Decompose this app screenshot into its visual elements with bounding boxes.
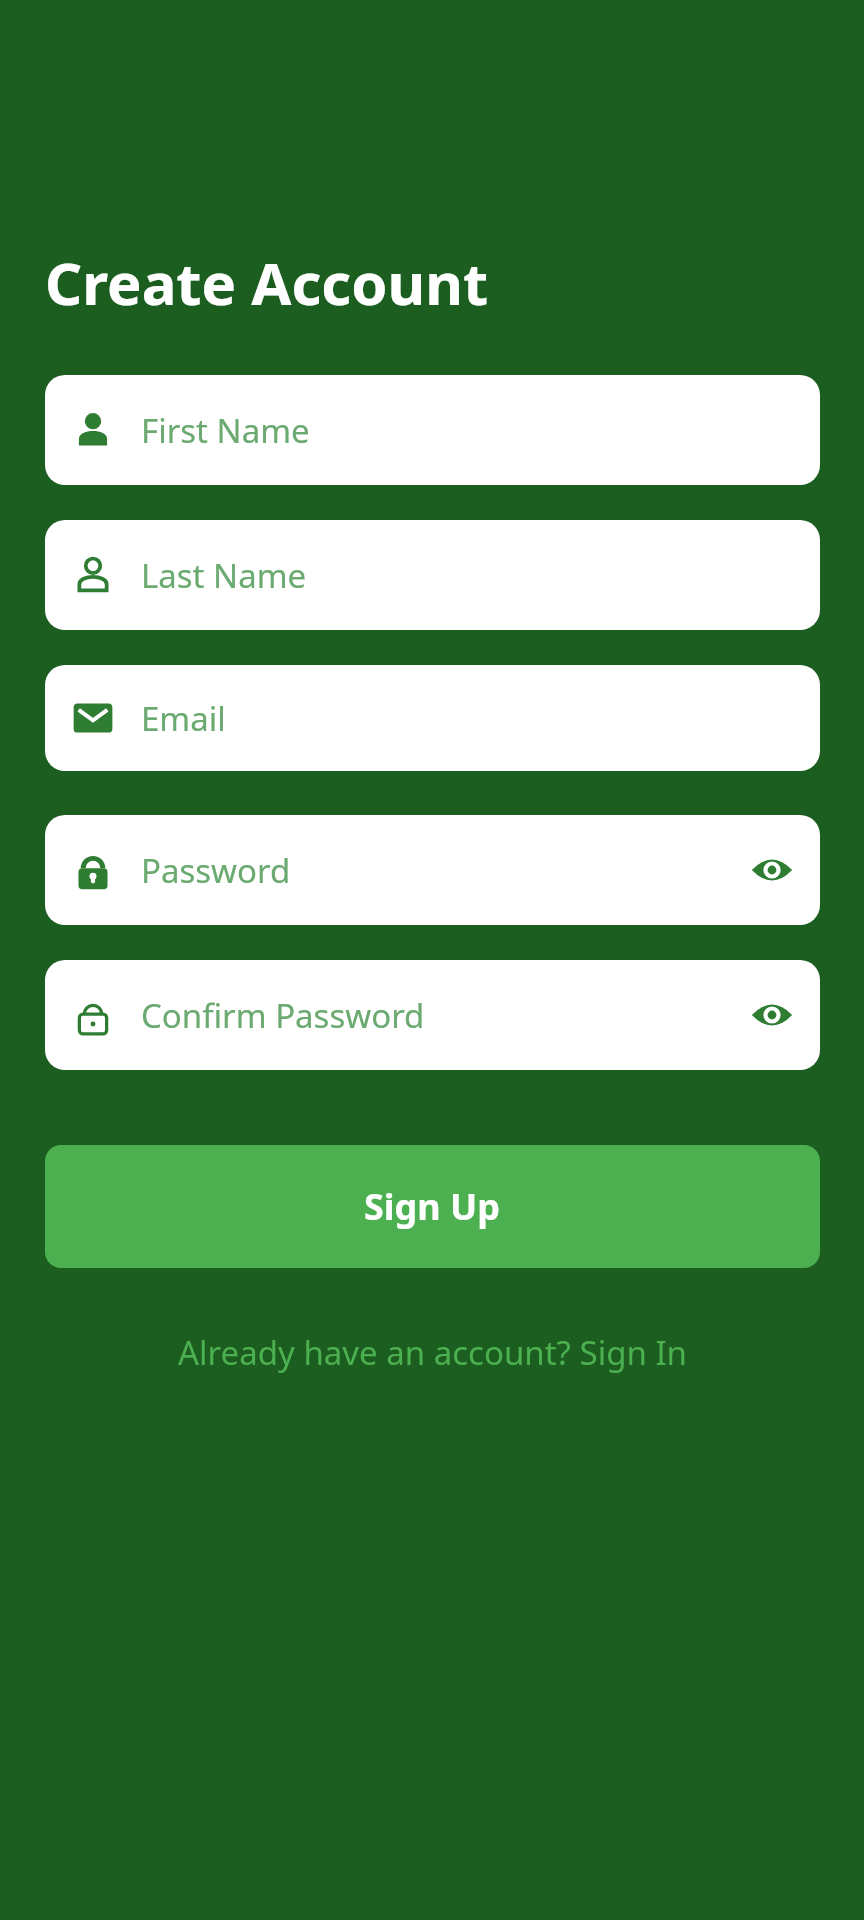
button[interactable]: Email (45, 665, 820, 771)
staticText: Already have an account? Sign In (178, 1330, 687, 1375)
button[interactable]: Sign Up (45, 1145, 820, 1268)
button[interactable]: First Name (45, 375, 820, 485)
button[interactable]: Show password (742, 985, 802, 1045)
staticText: Last Name (141, 553, 307, 598)
staticText: First Name (141, 408, 310, 453)
button[interactable]: Password (45, 815, 820, 925)
staticText: Sign Up (364, 1182, 501, 1231)
staticText: Create Account (45, 243, 489, 322)
staticText: Email (141, 696, 226, 741)
button[interactable]: Confirm Password (45, 960, 820, 1070)
button[interactable]: Last Name (45, 520, 820, 630)
staticText: Password (141, 848, 291, 893)
staticText: Confirm Password (141, 993, 425, 1038)
button[interactable]: Already have an account? Sign In (45, 1330, 820, 1375)
button[interactable]: Show password (742, 840, 802, 900)
